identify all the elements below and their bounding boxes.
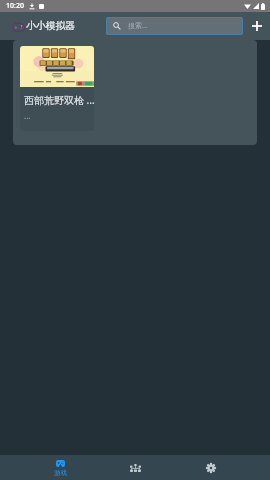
staticText: ... xyxy=(24,110,31,121)
button[interactable]: Logo xyxy=(11,20,25,33)
staticText: 游戏 xyxy=(54,469,67,477)
staticText: 小小模拟器 xyxy=(26,20,75,32)
button[interactable]: 西部荒野双枪 ... xyxy=(20,46,94,131)
staticText: 搜索... xyxy=(128,21,148,31)
button[interactable]: Settings xyxy=(173,455,248,480)
staticText: 西部荒野双枪 ... xyxy=(24,93,94,107)
button[interactable]: 搜索... xyxy=(106,17,243,35)
button[interactable]: Add xyxy=(248,17,266,35)
staticText: 10:20 xyxy=(6,1,24,11)
button[interactable]: Network xyxy=(98,455,173,480)
button[interactable]: Games xyxy=(22,455,98,480)
